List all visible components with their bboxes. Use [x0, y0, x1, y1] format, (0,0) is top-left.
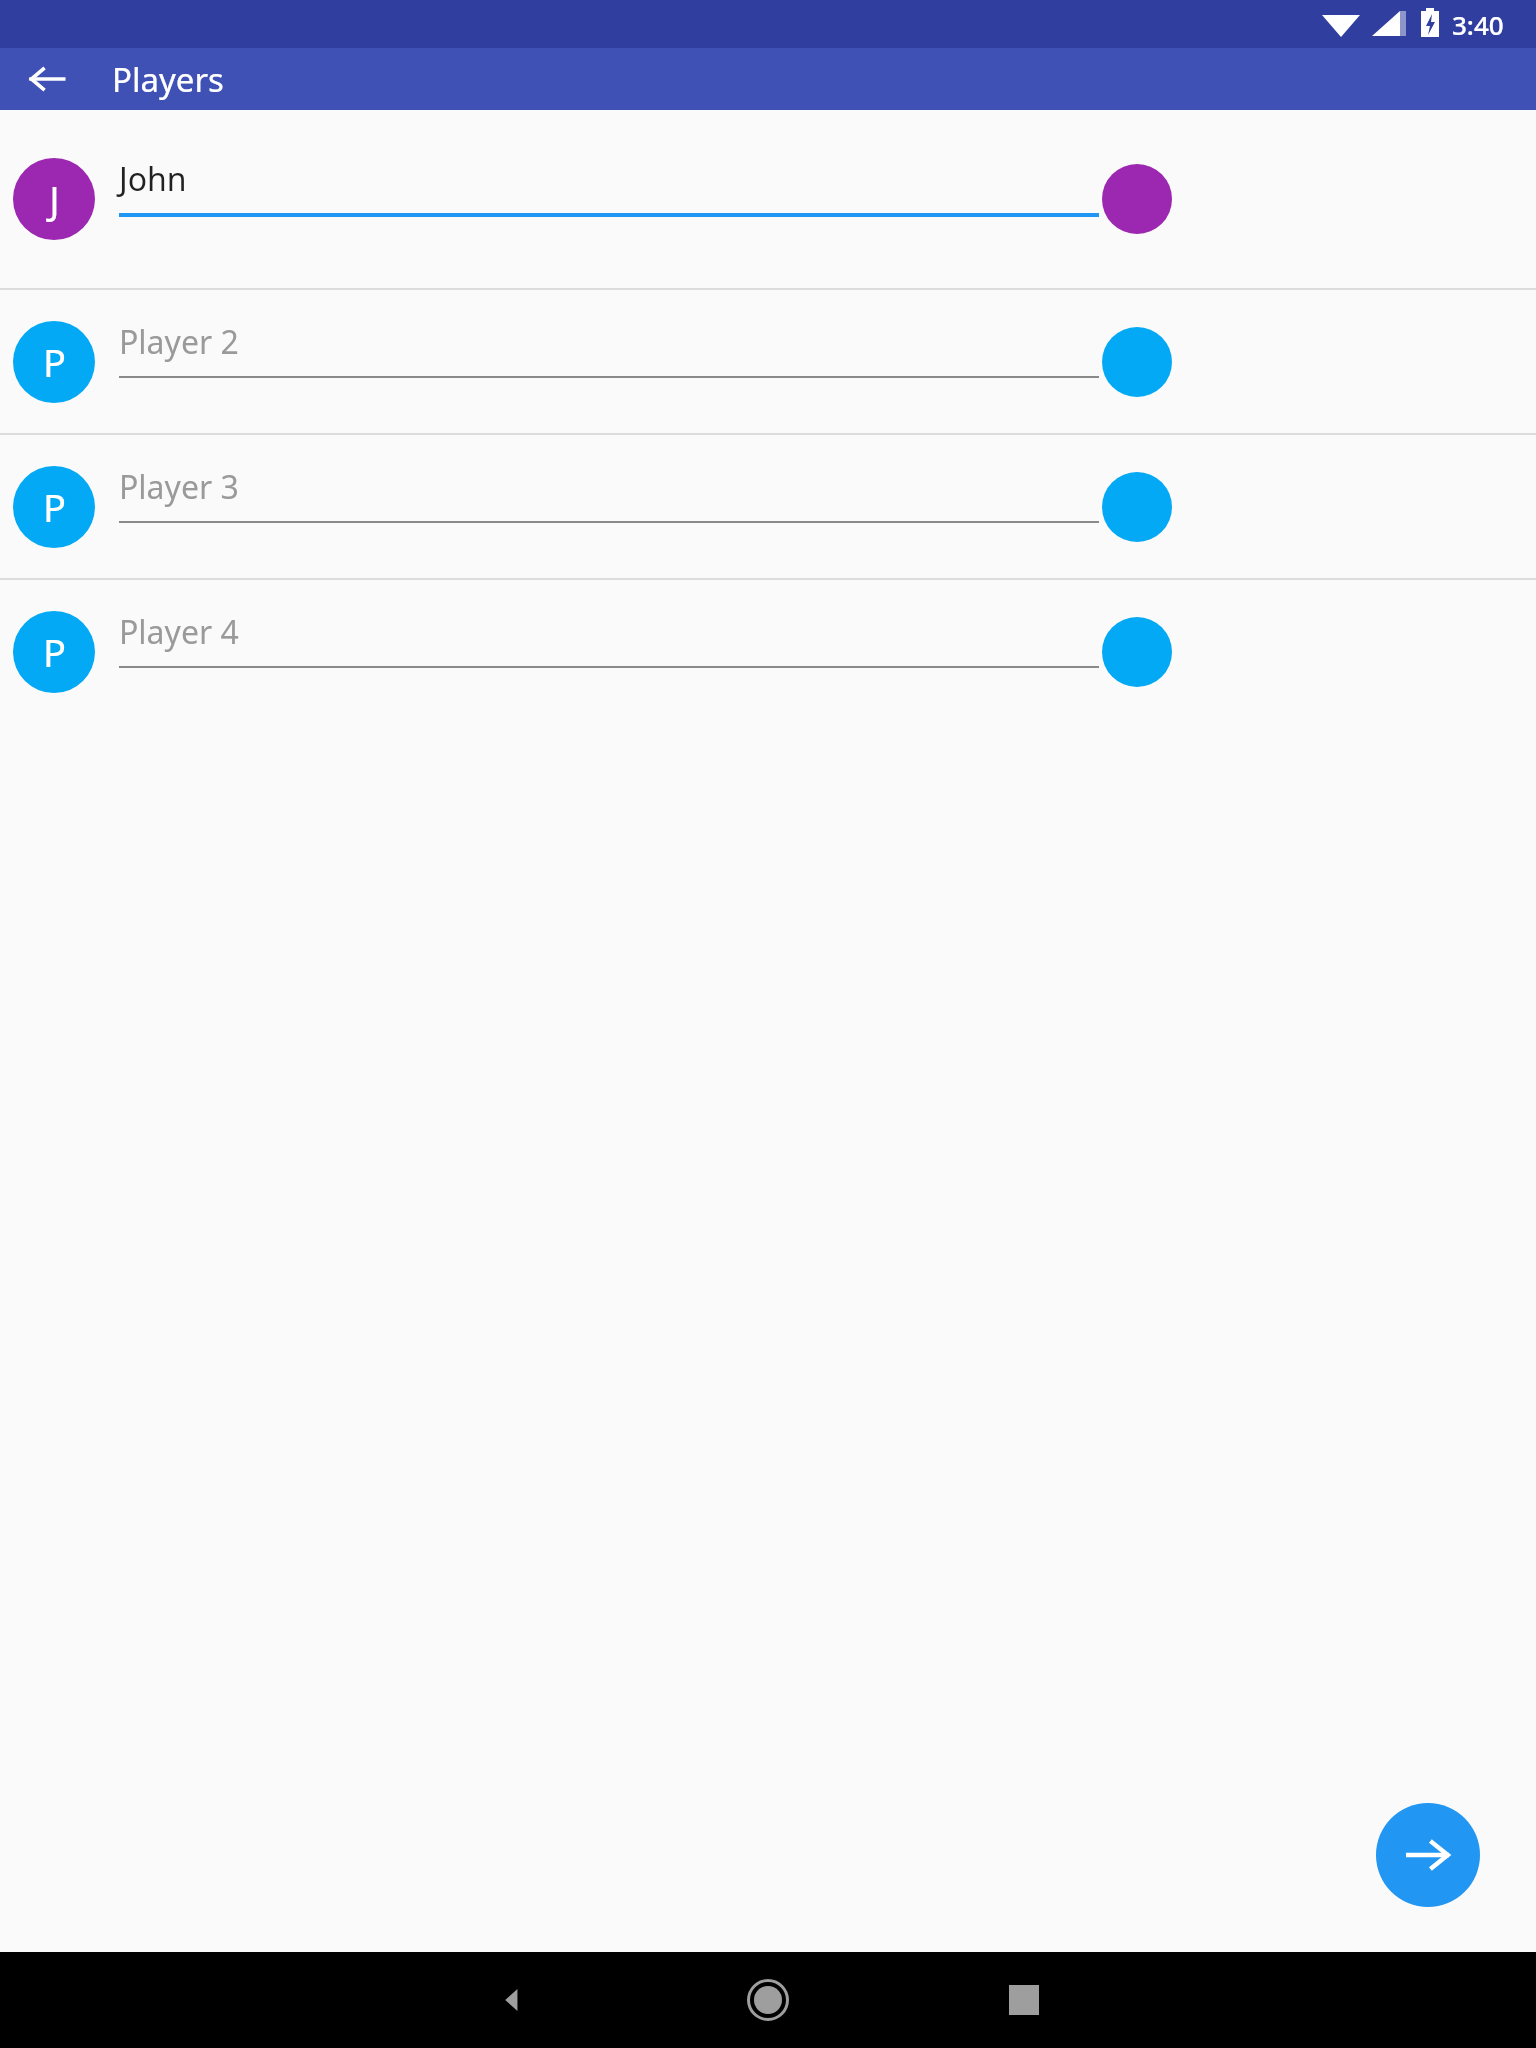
button[interactable]: J [0, 110, 1536, 288]
staticText: P [43, 626, 66, 678]
button[interactable]: Choose colour [1102, 472, 1172, 542]
staticText: P [43, 481, 66, 533]
button[interactable]: Choose colour [1102, 164, 1172, 234]
staticText: P [43, 336, 66, 388]
button[interactable]: Home [708, 1952, 828, 2048]
button[interactable]: Back [452, 1952, 572, 2048]
button[interactable]: Back [11, 48, 83, 110]
staticText: John [119, 157, 187, 201]
button[interactable]: P [0, 580, 1536, 723]
staticText: 3:40 [1452, 7, 1504, 42]
button[interactable]: Choose colour [1102, 617, 1172, 687]
staticText: J [49, 173, 60, 225]
staticText: Player 4 [119, 610, 239, 654]
button[interactable]: Recent apps [964, 1952, 1084, 2048]
staticText: Player 2 [119, 320, 239, 364]
button[interactable]: Next [1376, 1803, 1480, 1907]
staticText: Players [112, 57, 224, 102]
button[interactable]: Choose colour [1102, 327, 1172, 397]
button[interactable]: P [0, 290, 1536, 433]
button[interactable]: P [0, 435, 1536, 578]
staticText: Player 3 [119, 465, 239, 509]
